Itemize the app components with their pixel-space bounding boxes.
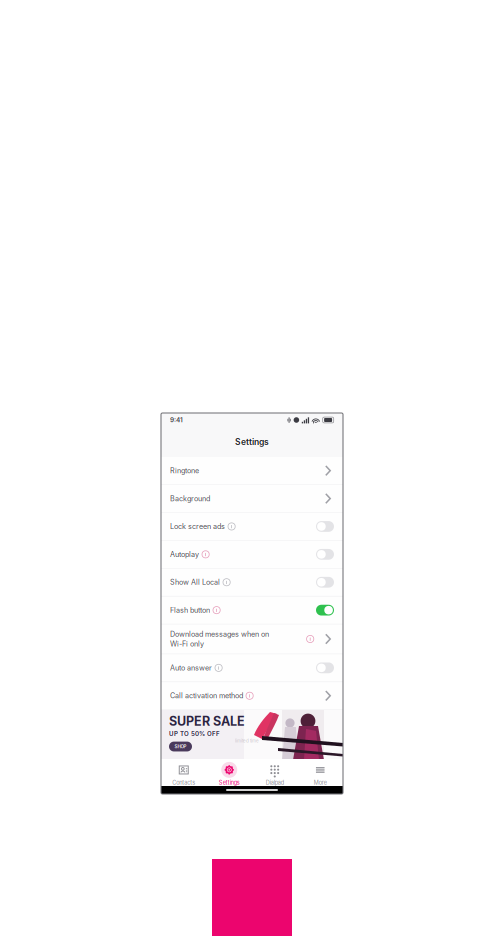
staticText: Settings — [235, 437, 269, 447]
button[interactable]: More — [297, 759, 343, 786]
staticText: Auto answer — [170, 663, 212, 672]
staticText: Download messages when on — [170, 630, 269, 638]
staticText: UP TO 50% OFF — [169, 730, 220, 738]
button[interactable]: Show All Local — [161, 569, 343, 596]
staticText: Ringtone — [170, 466, 199, 475]
button[interactable]: Autoplay — [161, 541, 343, 569]
staticText: Contacts — [172, 779, 195, 786]
staticText: Dialpad — [266, 779, 284, 786]
button[interactable]: Flash button — [161, 596, 343, 624]
button[interactable]: Dialpad — [252, 759, 297, 786]
button[interactable]: limited time — [161, 710, 343, 759]
staticText: Lock screen ads — [170, 522, 225, 531]
button[interactable]: Download messages when on — [161, 624, 343, 654]
staticText: Settings — [219, 779, 240, 786]
staticText: Flash button — [170, 606, 210, 614]
button[interactable]: Auto answer — [161, 654, 343, 682]
button[interactable]: Contacts — [161, 759, 206, 786]
button[interactable]: Call activation method — [161, 682, 343, 710]
staticText: Show All Local — [170, 578, 220, 587]
staticText: limited time — [235, 738, 259, 743]
staticText: Wi-Fi only — [170, 639, 204, 648]
staticText: SUPER SALE — [169, 713, 245, 729]
button[interactable]: Ringtone — [161, 457, 343, 485]
staticText: More — [314, 779, 327, 786]
staticText: Autoplay — [170, 550, 199, 559]
staticText: 9:41 — [170, 416, 183, 424]
button[interactable]: Background — [161, 485, 343, 513]
staticText: Call activation method — [170, 691, 243, 700]
button[interactable]: Settings — [206, 759, 252, 786]
staticText: SHOP — [174, 744, 186, 749]
staticText: Background — [170, 494, 210, 503]
button[interactable]: Lock screen ads — [161, 513, 343, 541]
